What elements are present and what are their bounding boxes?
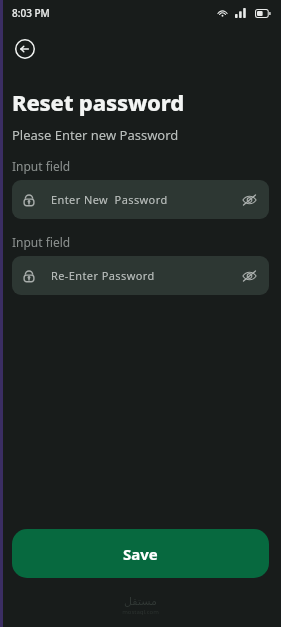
staticText: Enter New Password bbox=[51, 192, 239, 207]
button[interactable]: Back bbox=[10, 34, 40, 64]
button[interactable]: Save bbox=[12, 529, 269, 578]
staticText: Input field bbox=[12, 158, 71, 174]
button[interactable]: Show password bbox=[239, 266, 259, 286]
staticText: مستقل bbox=[124, 595, 157, 608]
staticText: Input field bbox=[12, 234, 71, 250]
staticText: 8:03 PM bbox=[12, 6, 50, 20]
button[interactable]: Show password bbox=[239, 190, 259, 210]
staticText: Reset password bbox=[12, 87, 184, 117]
staticText: Re-Enter Password bbox=[51, 268, 239, 283]
staticText: Please Enter new Password bbox=[12, 126, 179, 144]
button[interactable]: Re-Enter Password bbox=[12, 256, 269, 295]
button[interactable]: Enter New Password bbox=[12, 180, 269, 219]
staticText: mostaql.com bbox=[122, 608, 159, 616]
staticText: Save bbox=[123, 544, 158, 564]
